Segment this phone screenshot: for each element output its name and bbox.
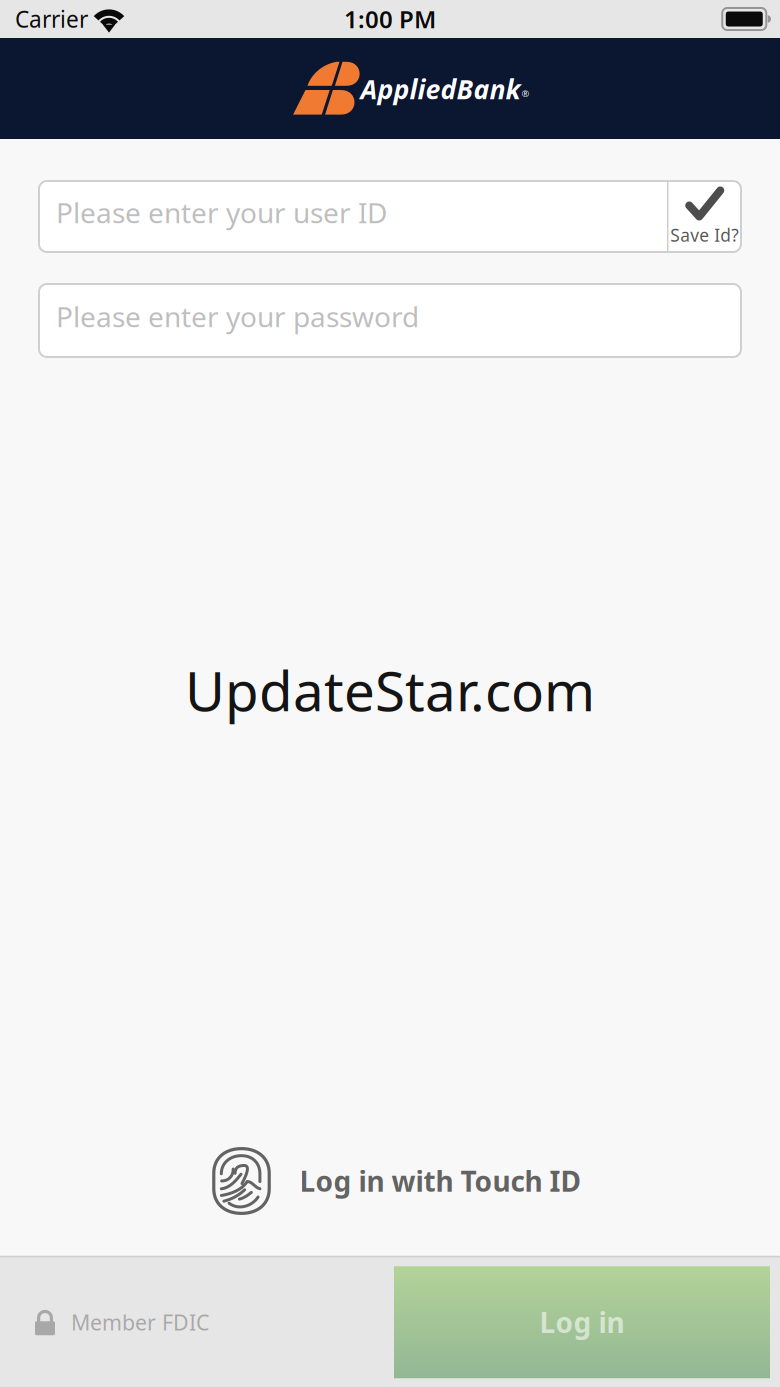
staticText: Log in (539, 1304, 624, 1341)
staticText: AppliedBank (360, 71, 520, 107)
staticText: Carrier (15, 4, 88, 34)
button[interactable]: Save Id? (668, 181, 741, 252)
staticText: Member FDIC (71, 1308, 209, 1336)
staticText: Please enter your user ID (56, 194, 387, 231)
staticText: UpdateStar.com (185, 654, 595, 726)
button[interactable]: Log in with Touch ID (199, 1138, 580, 1224)
button[interactable]: Log in (394, 1266, 770, 1378)
staticText: Please enter your password (56, 298, 419, 335)
staticText: Save Id? (670, 223, 739, 246)
button[interactable]: Please enter your user ID (39, 181, 667, 252)
staticText: ® (521, 87, 529, 100)
button[interactable]: Please enter your password (39, 284, 741, 357)
staticText: 1:00 PM (344, 3, 436, 35)
staticText: Log in with Touch ID (299, 1162, 580, 1200)
